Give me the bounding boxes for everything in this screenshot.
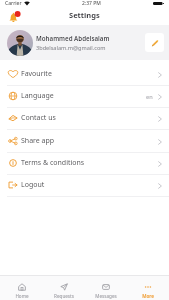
- staticText: Share app: [21, 136, 55, 146]
- button[interactable]: Logout: [0, 175, 169, 197]
- button[interactable]: More: [127, 276, 169, 300]
- staticText: Logout: [21, 180, 45, 190]
- button[interactable]: Messages: [85, 276, 127, 300]
- button[interactable]: Contact us: [0, 108, 169, 130]
- staticText: Favourite: [21, 69, 52, 79]
- staticText: Carrier: [5, 0, 22, 7]
- button[interactable]: Favourite: [0, 64, 169, 86]
- button[interactable]: Mohammed Abdelsalam: [0, 25, 169, 60]
- button[interactable]: Terms & conditions: [0, 153, 169, 175]
- staticText: Requests: [54, 293, 74, 299]
- staticText: 2:37 PM: [82, 0, 101, 7]
- staticText: en: [146, 93, 153, 101]
- button[interactable]: Edit profile: [145, 33, 164, 52]
- button[interactable]: Language: [0, 86, 169, 108]
- button[interactable]: Home: [0, 276, 43, 300]
- staticText: Settings: [69, 10, 100, 20]
- button[interactable]: Share app: [0, 130, 169, 153]
- staticText: More: [142, 293, 154, 299]
- staticText: Mohammed Abdelsalam: [36, 34, 110, 42]
- staticText: Terms & conditions: [21, 158, 85, 168]
- button[interactable]: Notifications: [8, 12, 20, 24]
- staticText: Language: [21, 91, 54, 101]
- staticText: 3bdelsalam.m@gmail.com: [36, 44, 106, 52]
- staticText: Contact us: [21, 113, 56, 123]
- staticText: Messages: [95, 293, 117, 299]
- staticText: Home: [15, 293, 29, 299]
- button[interactable]: Requests: [43, 276, 85, 300]
